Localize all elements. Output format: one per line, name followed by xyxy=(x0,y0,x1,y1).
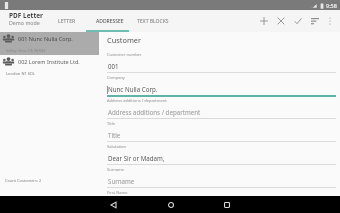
staticText: Title xyxy=(107,121,115,126)
staticText: Company xyxy=(107,75,125,80)
staticText: 9:58 xyxy=(326,2,337,9)
button[interactable]: Customer number xyxy=(107,52,336,75)
staticText: 001 xyxy=(108,62,119,70)
staticText: 001 Nunc Nulla Corp. xyxy=(18,35,73,42)
button[interactable]: Add xyxy=(255,11,272,31)
staticText: PDF Letter xyxy=(9,11,43,20)
button[interactable]: Salutation xyxy=(107,144,336,167)
staticText: Valley View CA 96843 xyxy=(6,48,46,53)
staticText: Customer xyxy=(107,35,142,45)
button[interactable]: Surname xyxy=(107,167,336,190)
staticText: Demo mode xyxy=(9,19,40,26)
staticText: Count Customers: 2 xyxy=(5,178,42,183)
button[interactable]: More options xyxy=(323,11,337,31)
staticText: 002 Lorem Institute Ltd. xyxy=(18,58,80,65)
button[interactable]: Sort xyxy=(306,11,323,31)
staticText: Surname xyxy=(108,177,135,185)
staticText: Address additions / department xyxy=(107,98,167,103)
staticText: Title xyxy=(108,131,121,139)
button[interactable]: ADDRESSEE xyxy=(88,10,131,32)
staticText: London N1 6DL xyxy=(6,71,36,76)
button[interactable]: Title xyxy=(107,121,336,144)
button[interactable]: TEXT BLOCKS xyxy=(131,10,174,32)
button[interactable]: Recents xyxy=(218,196,235,213)
button[interactable]: 001 Nunc Nulla Corp. xyxy=(0,32,99,55)
staticText: Dear Sir or Madam, xyxy=(108,154,165,162)
staticText: Salutation xyxy=(107,144,126,149)
staticText: First Name xyxy=(107,190,128,195)
staticText: Customer number xyxy=(107,52,142,57)
staticText: Address additions / department xyxy=(108,108,201,116)
staticText: TEXT BLOCKS xyxy=(137,18,169,25)
button[interactable]: Close xyxy=(272,11,289,31)
button[interactable]: LETTER xyxy=(45,10,88,32)
button[interactable]: 002 Lorem Institute Ltd. xyxy=(0,55,99,78)
button[interactable]: Back xyxy=(105,196,122,213)
staticText: LETTER xyxy=(58,18,76,25)
button[interactable]: Address additions / department xyxy=(107,98,336,121)
button[interactable]: Company xyxy=(107,75,336,98)
button[interactable]: Save xyxy=(289,11,306,31)
staticText: Nunc Nulla Corp. xyxy=(108,85,158,93)
staticText: ADDRESSEE xyxy=(96,18,124,25)
button[interactable]: Home xyxy=(162,196,179,213)
staticText: Surname xyxy=(107,167,125,172)
